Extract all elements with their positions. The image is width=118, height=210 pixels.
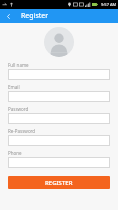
staticText: 9:57 AM (101, 2, 117, 7)
button[interactable] (8, 91, 110, 102)
staticText: Email (8, 84, 20, 90)
button[interactable] (8, 157, 110, 168)
staticText: REGISTER (45, 179, 73, 187)
staticText: Password (8, 106, 29, 112)
button[interactable] (8, 69, 110, 80)
button[interactable]: Back (3, 11, 14, 22)
button[interactable]: REGISTER (8, 176, 110, 189)
staticText: Re-Password (8, 128, 36, 134)
staticText: Full name (8, 62, 29, 68)
button[interactable] (8, 135, 110, 146)
staticText: Phone (8, 150, 22, 156)
button[interactable] (8, 113, 110, 124)
staticText: Register (21, 11, 49, 21)
button[interactable]: Profile photo (44, 27, 74, 57)
